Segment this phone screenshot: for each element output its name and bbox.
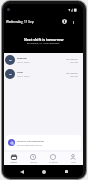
button[interactable]: Recents (61, 166, 72, 177)
staticText: Profile (71, 161, 76, 163)
staticText: Wednesday, 11 Sep (6, 20, 34, 24)
staticText: Tomorrow (17, 57, 27, 60)
staticText: Timecard (30, 161, 37, 163)
staticText: 7:00 AM - 3:00 PM (17, 61, 30, 63)
button[interactable]: Home (38, 166, 49, 177)
staticText: Find more opportunities near you (17, 144, 43, 146)
staticText: Friday (17, 71, 23, 74)
staticText: Lunch Shift (70, 75, 78, 77)
button[interactable]: Search for Shift Opportunities (6, 135, 81, 150)
staticText: 25 (9, 73, 12, 76)
button[interactable]: More options (69, 18, 77, 26)
staticText: Next shift is tomorrow (24, 37, 64, 42)
staticText: 22 (9, 59, 12, 62)
staticText: at Fremont, CA • The Cakeshack (27, 42, 60, 45)
staticText: The Cakeshack (66, 72, 78, 74)
button[interactable]: My Benefits (43, 152, 63, 165)
staticText: Schedule (10, 161, 17, 163)
staticText: My Benefits (49, 161, 58, 163)
button[interactable]: 22 (4, 53, 83, 67)
staticText: The Cakeshack (66, 58, 78, 60)
button[interactable]: Back (16, 166, 27, 177)
button[interactable]: 25 (4, 67, 83, 81)
staticText: Lunch Shift (70, 61, 78, 63)
button[interactable]: Schedule (4, 152, 23, 165)
staticText: Search for Shift Opportunities (17, 140, 44, 143)
button[interactable]: Notifications (60, 17, 69, 26)
staticText: 7:00 AM - 3:00 PM (17, 75, 30, 77)
button[interactable]: Timecard (23, 152, 43, 165)
button[interactable]: Profile (63, 152, 83, 165)
